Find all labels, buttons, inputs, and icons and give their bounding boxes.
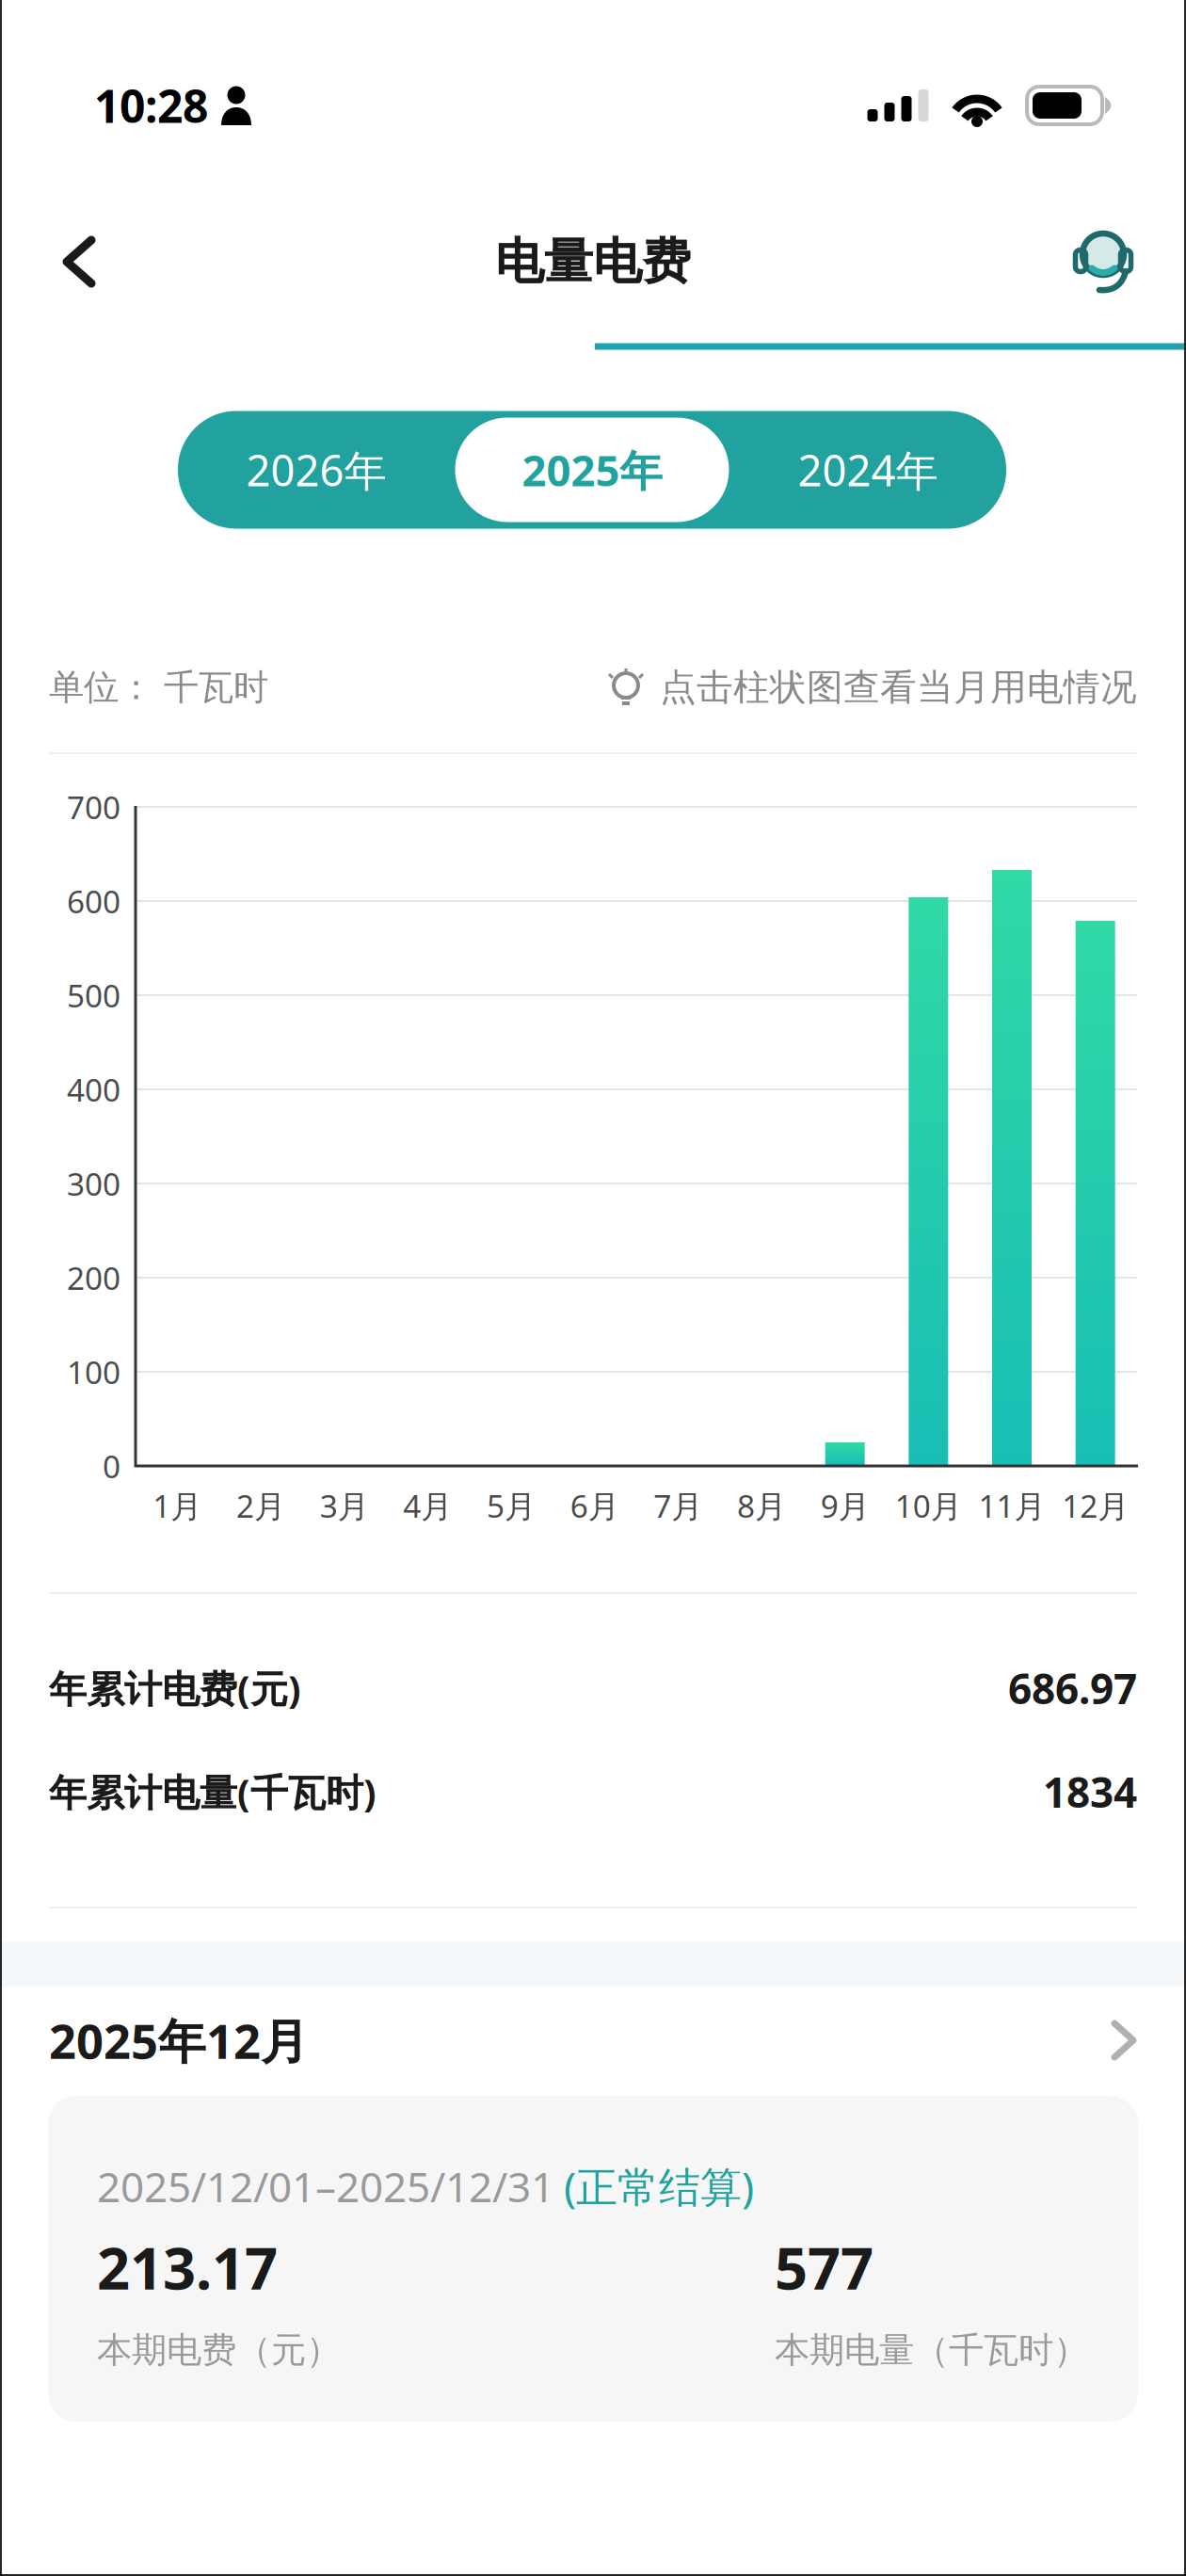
staticText: 213.17 — [97, 2229, 278, 2306]
button[interactable] — [1076, 230, 1134, 296]
staticText: 9月 — [821, 1485, 869, 1526]
staticText: 10月 — [895, 1485, 962, 1526]
staticText: 本期电费（元） — [97, 2328, 341, 2372]
staticText: 200 — [67, 1257, 120, 1299]
staticText: 7月 — [654, 1485, 702, 1526]
staticText: 5月 — [487, 1485, 536, 1526]
staticText: 年累计电量(千瓦时) — [49, 1767, 377, 1817]
staticText: 2025年12月 — [49, 2009, 309, 2072]
staticText: 点击柱状图查看当月用电情况 — [660, 665, 1137, 710]
staticText: 400 — [67, 1069, 120, 1110]
staticText: 8月 — [737, 1485, 786, 1526]
button[interactable]: 2025/12/01–2025/12/31 — [48, 2096, 1138, 2422]
button[interactable]: 2024年 — [731, 411, 1004, 529]
staticText: 2025年 — [522, 441, 662, 498]
staticText: 本期电量（千瓦时） — [775, 2328, 1088, 2372]
staticText: 6月 — [570, 1485, 619, 1526]
staticText: 3月 — [320, 1485, 369, 1526]
button[interactable] — [67, 240, 91, 283]
staticText: 500 — [67, 974, 120, 1016]
staticText: 年累计电费(元) — [49, 1663, 301, 1713]
staticText: 1834 — [1043, 1764, 1137, 1819]
staticText: 0 — [103, 1445, 120, 1487]
button[interactable]: 2026年 — [180, 411, 453, 529]
staticText: (正常结算) — [564, 2159, 754, 2214]
button[interactable]: 2025年 — [455, 418, 729, 522]
staticText: 2024年 — [798, 441, 938, 498]
staticText: 电量电费 — [495, 232, 691, 292]
staticText: 11月 — [978, 1485, 1045, 1526]
staticText: 10:28 — [94, 75, 208, 135]
staticText: 700 — [67, 786, 120, 828]
staticText: 577 — [775, 2229, 873, 2306]
staticText: 4月 — [403, 1485, 452, 1526]
staticText: 2026年 — [246, 441, 386, 498]
staticText: 2025/12/01–2025/12/31 — [97, 2159, 554, 2214]
staticText: 1月 — [153, 1485, 202, 1526]
staticText: 2月 — [236, 1485, 285, 1526]
button[interactable]: 2025年12月 — [0, 2009, 1186, 2072]
staticText: 12月 — [1062, 1485, 1129, 1526]
staticText: 600 — [67, 880, 120, 922]
staticText: 686.97 — [1008, 1661, 1137, 1716]
staticText: 300 — [67, 1163, 120, 1204]
staticText: 单位： 千瓦时 — [49, 666, 268, 709]
staticText: 100 — [67, 1351, 120, 1393]
